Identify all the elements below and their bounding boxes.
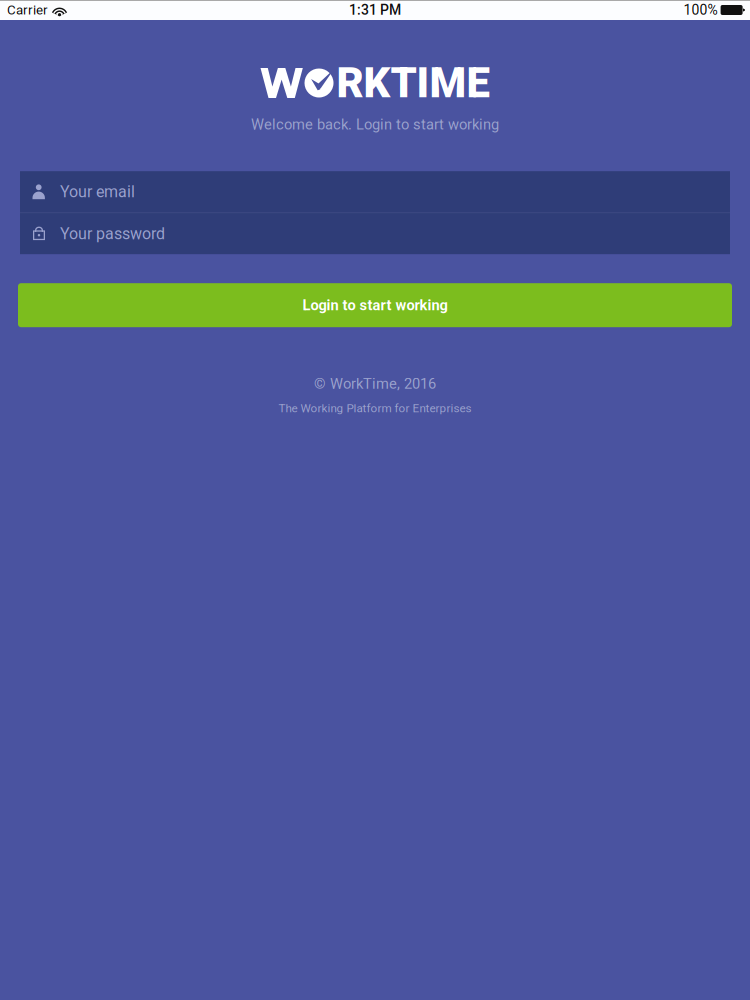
staticText: The Working Platform for Enterprises (278, 401, 471, 415)
button[interactable]: Your email (20, 171, 730, 212)
staticText: Carrier (7, 2, 48, 18)
staticText: 1:31 PM (349, 2, 401, 18)
staticText: Your password (60, 224, 165, 243)
staticText: 100% (684, 2, 718, 18)
staticText: Login to start working (302, 297, 447, 314)
button[interactable]: Login to start working (18, 283, 732, 327)
staticText: © WorkTime, 2016 (314, 375, 436, 392)
staticText: RKTIME (336, 58, 489, 108)
staticText: Your email (60, 182, 135, 201)
button[interactable]: Your password (20, 213, 730, 254)
staticText: Welcome back. Login to start working (251, 116, 499, 133)
